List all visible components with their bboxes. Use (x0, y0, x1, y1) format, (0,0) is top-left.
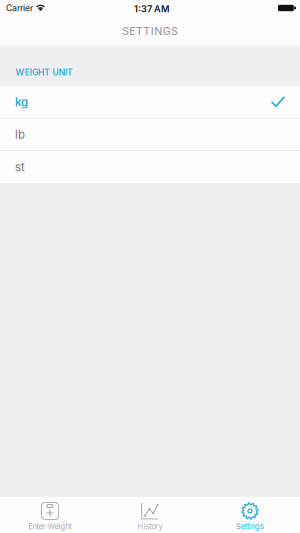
button[interactable]: History (100, 497, 200, 533)
staticText: Carrier (6, 3, 33, 13)
staticText: lb (15, 128, 25, 141)
button[interactable]: Settings (200, 497, 300, 533)
staticText: st (15, 160, 25, 174)
button[interactable]: lb (0, 118, 300, 150)
staticText: Enter Weight (28, 522, 71, 531)
staticText: WEIGHT UNIT (15, 67, 73, 77)
button[interactable]: kg (0, 86, 300, 118)
staticText: 1:37 AM (134, 3, 169, 14)
button[interactable]: st (0, 151, 300, 183)
staticText: SETTINGS (122, 24, 178, 38)
staticText: History (137, 522, 162, 531)
staticText: kg (15, 95, 28, 109)
button[interactable]: Enter Weight (0, 497, 100, 533)
staticText: Settings (236, 522, 264, 531)
